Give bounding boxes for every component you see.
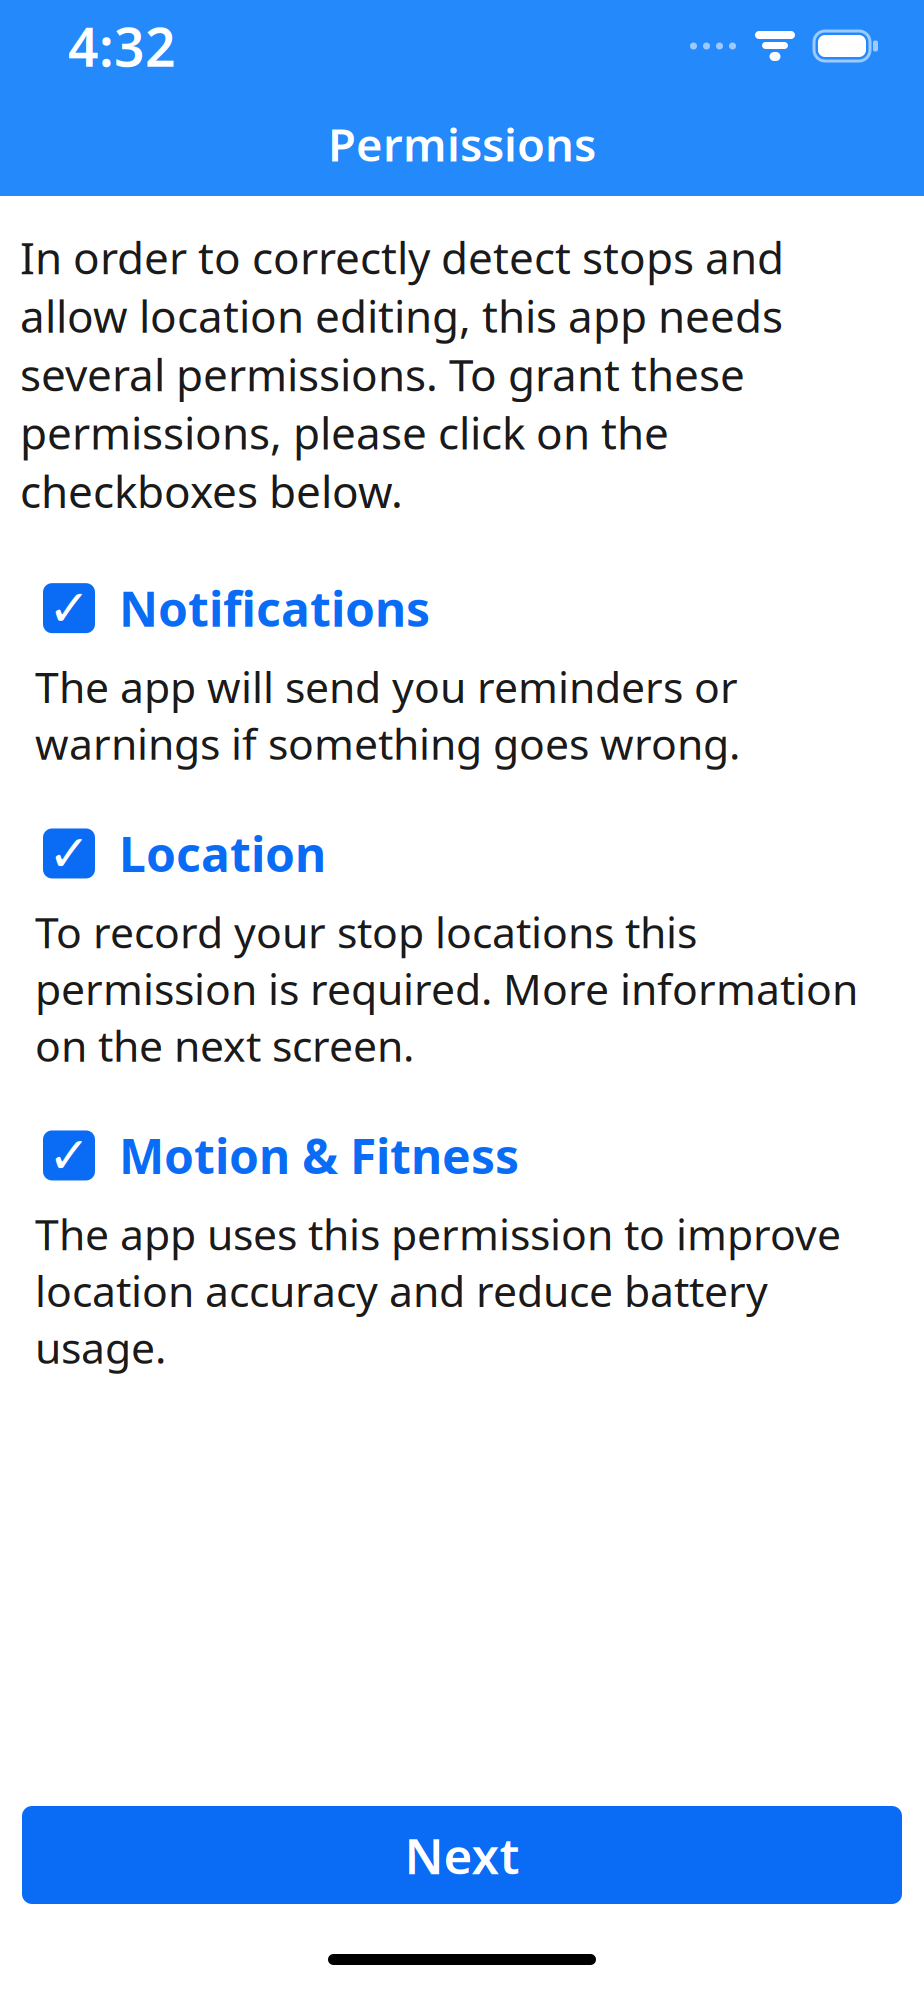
staticText: Location <box>119 822 326 885</box>
staticText: 4:32 <box>68 11 176 81</box>
button[interactable]: ✓ <box>0 1127 924 1183</box>
staticText: The app uses this permission to improve … <box>35 1205 841 1375</box>
staticText: ✓ <box>48 579 90 637</box>
button[interactable]: ✓ <box>0 825 924 881</box>
staticText: Next <box>404 1822 519 1888</box>
button[interactable]: ✓ <box>0 580 924 636</box>
staticText: Notifications <box>119 576 430 640</box>
staticText: Permissions <box>328 114 596 174</box>
staticText: ✓ <box>48 1127 90 1184</box>
staticText: To record your stop locations this permi… <box>35 903 858 1073</box>
staticText: In order to correctly detect stops and a… <box>20 228 784 520</box>
staticText: Motion & Fitness <box>119 1124 519 1187</box>
staticText: ✓ <box>48 825 90 882</box>
button[interactable]: Next <box>22 1806 902 1904</box>
staticText: The app will send you reminders or warni… <box>35 658 740 771</box>
